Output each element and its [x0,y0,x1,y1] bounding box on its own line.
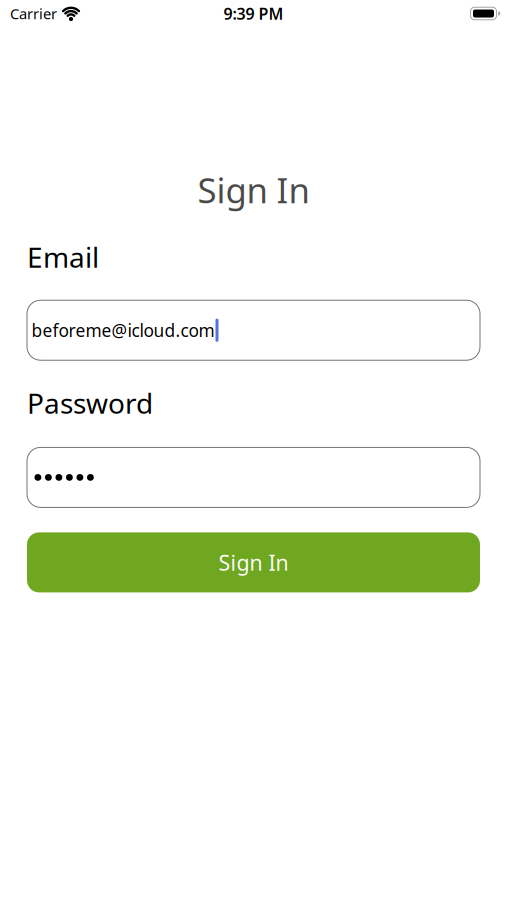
staticText: Sign In [197,167,309,213]
staticText: Sign In [218,548,288,576]
button[interactable]: Sign In [27,532,480,592]
button[interactable]: Email [27,300,480,360]
staticText: Carrier [10,4,57,23]
staticText: Password [27,384,153,422]
staticText: Email [27,238,99,275]
button[interactable]: Password [27,447,480,507]
staticText: beforeme@icloud.com [31,319,214,342]
staticText: 9:39 PM [223,3,283,24]
